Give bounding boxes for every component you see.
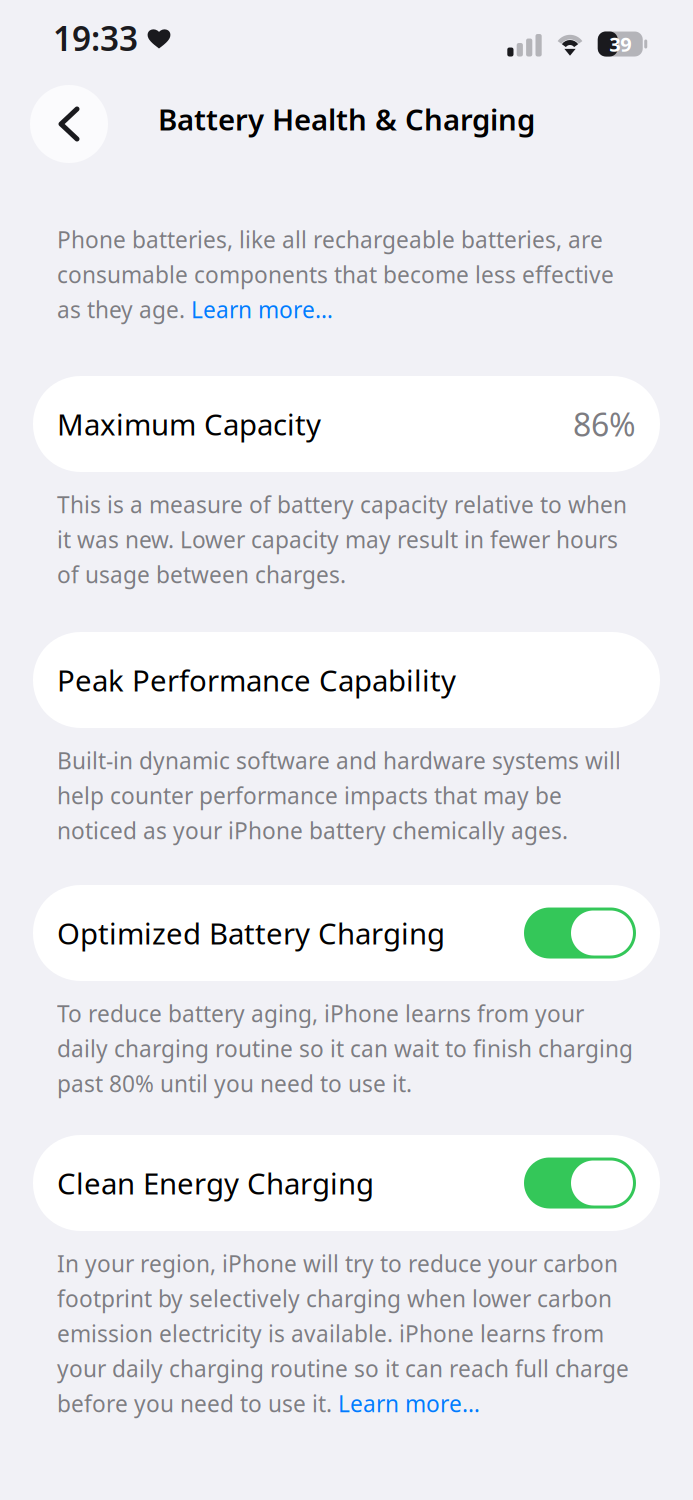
button[interactable]: Optimized Battery Charging [33,885,660,981]
staticText: Learn more… [191,294,333,324]
staticText: 39 [609,31,631,57]
button[interactable]: Clean Energy Charging [33,1135,660,1231]
button[interactable]: Optimized Battery Charging [524,907,636,958]
button[interactable]: Maximum Capacity [33,376,660,472]
staticText: help counter performance impacts that ma… [57,780,562,810]
button[interactable]: Clean Energy Charging [524,1157,636,1208]
staticText: 19:33 [53,16,138,60]
staticText: Peak Performance Capability [57,660,456,699]
staticText: Clean Energy Charging [57,1163,374,1202]
button[interactable]: Back [30,85,108,163]
staticText: as they age. [57,294,191,324]
staticText: it was new. Lower capacity may result in… [57,524,618,554]
staticText: 86% [573,403,636,445]
staticText: Learn more… [338,1388,480,1418]
button[interactable]: Learn more… [191,294,333,324]
staticText: In your region, iPhone will try to reduc… [57,1248,618,1278]
staticText: of usage between charges. [57,559,346,589]
staticText: past 80% until you need to use it. [57,1068,412,1098]
button[interactable]: Learn more… [338,1388,480,1418]
staticText: Optimized Battery Charging [57,913,445,952]
staticText: Phone batteries, like all rechargeable b… [57,224,603,254]
staticText: before you need to use it. [57,1388,338,1418]
staticText: footprint by selectively charging when l… [57,1283,612,1313]
staticText: consumable components that become less e… [57,259,614,289]
staticText: Maximum Capacity [57,404,321,443]
button[interactable]: Peak Performance Capability [33,632,660,728]
staticText: emission electricity is available. iPhon… [57,1318,604,1348]
staticText: daily charging routine so it can wait to… [57,1033,633,1063]
staticText: noticed as your iPhone battery chemicall… [57,815,568,845]
staticText: To reduce battery aging, iPhone learns f… [57,998,584,1028]
staticText: Battery Health & Charging [158,99,535,138]
staticText: your daily charging routine so it can re… [57,1353,629,1383]
staticText: This is a measure of battery capacity re… [57,489,627,519]
staticText: Built-in dynamic software and hardware s… [57,745,621,775]
